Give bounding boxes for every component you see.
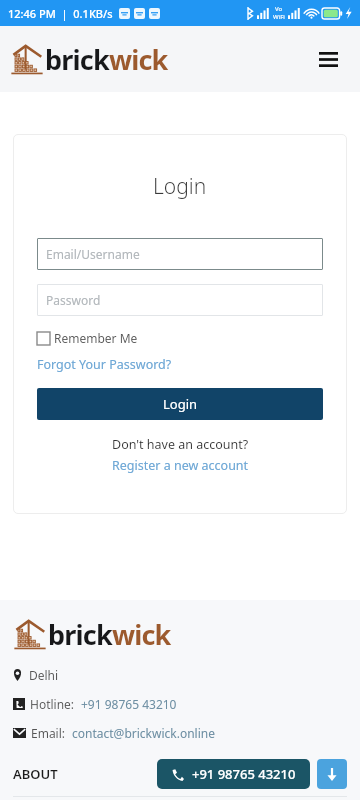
button[interactable]: Register a new account <box>112 457 249 474</box>
staticText: +91 98765 43210 <box>192 765 296 783</box>
button[interactable]: +91 98765 43210 <box>157 759 310 789</box>
button[interactable]: Download <box>317 759 347 789</box>
staticText: Register a new account <box>112 457 249 474</box>
staticText: Login <box>153 172 207 201</box>
staticText: Vo <box>275 5 283 13</box>
staticText: contact@brickwick.online <box>72 725 215 741</box>
staticText: brickwick <box>45 41 168 78</box>
staticText: brickwick <box>48 616 171 653</box>
staticText: Password <box>46 292 101 308</box>
staticText: WiFi <box>273 13 285 21</box>
button[interactable]: Remember Me <box>37 330 323 346</box>
staticText: Email/Username <box>46 246 140 262</box>
button[interactable]: Password <box>37 284 323 316</box>
staticText: ABOUT <box>13 765 58 783</box>
staticText: Delhi <box>29 667 59 683</box>
staticText: +91 98765 43210 <box>81 696 177 712</box>
button[interactable]: +91 98765 43210 <box>81 696 177 712</box>
button[interactable]: Menu <box>310 41 346 77</box>
staticText: 12:46 PM | 0.1KB/s <box>8 6 113 21</box>
staticText: Don't have an account? <box>112 436 249 453</box>
staticText: Email: <box>31 725 66 741</box>
button[interactable]: contact@brickwick.online <box>72 725 215 741</box>
staticText: Hotline: <box>30 696 75 712</box>
button[interactable]: Forgot Your Password? <box>37 356 323 373</box>
button[interactable]: Login <box>37 388 323 420</box>
button[interactable]: Email/Username <box>37 238 323 270</box>
staticText: Remember Me <box>54 330 138 346</box>
staticText: Login <box>163 395 198 413</box>
staticText: Forgot Your Password? <box>37 356 172 373</box>
